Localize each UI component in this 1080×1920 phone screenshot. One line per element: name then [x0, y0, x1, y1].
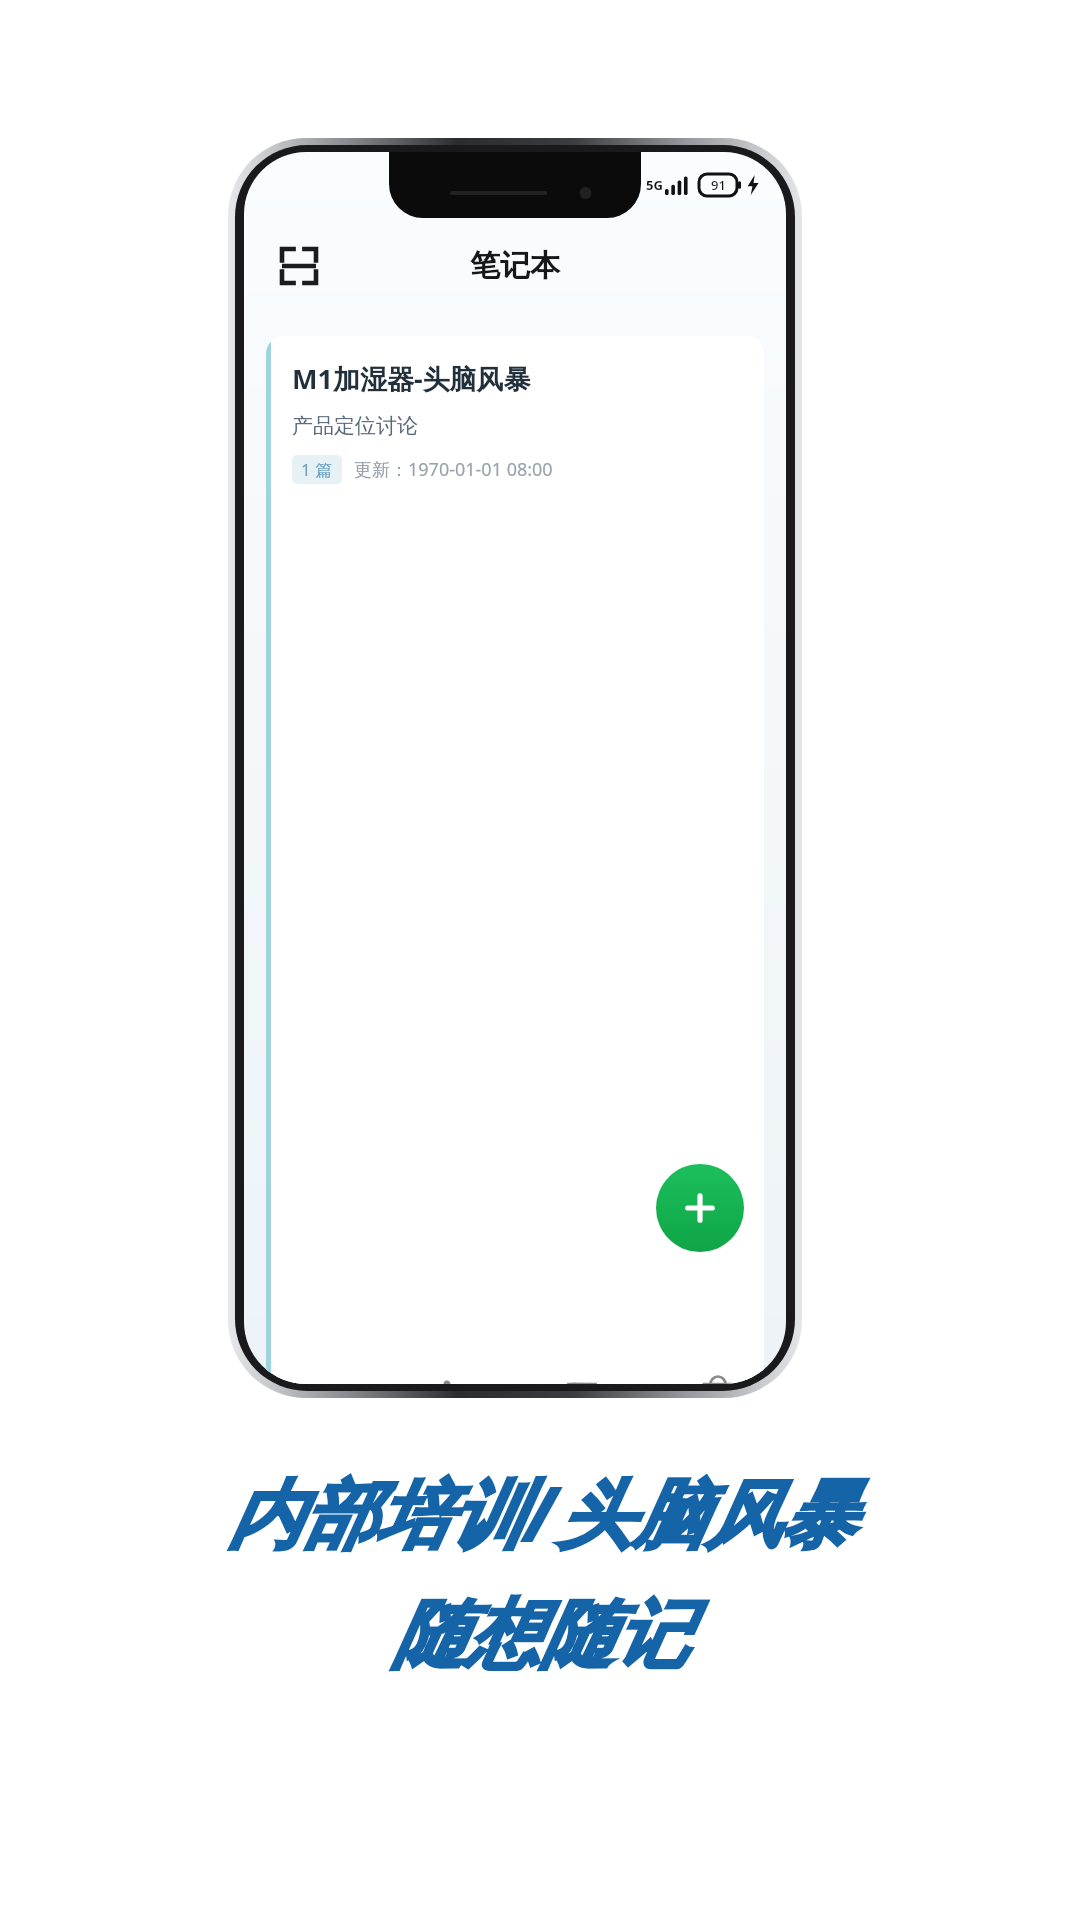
button[interactable]: Add note	[656, 1164, 744, 1252]
staticText: 1 篇	[301, 458, 333, 481]
staticText: 随想随记	[392, 1589, 688, 1682]
staticText: 91	[711, 176, 726, 194]
staticText: 5G	[646, 176, 663, 194]
button[interactable]: M1加湿器-头脑风暴	[266, 336, 764, 1384]
staticText: 更新：1970-01-01 08:00	[354, 457, 553, 482]
staticText: M1加湿器-头脑风暴	[292, 360, 531, 397]
staticText: 内部培训/头脑风暴	[227, 1462, 854, 1563]
staticText: 产品定位讨论	[292, 413, 418, 439]
staticText: 笔记本	[470, 247, 560, 285]
button[interactable]: Scan	[270, 237, 328, 295]
